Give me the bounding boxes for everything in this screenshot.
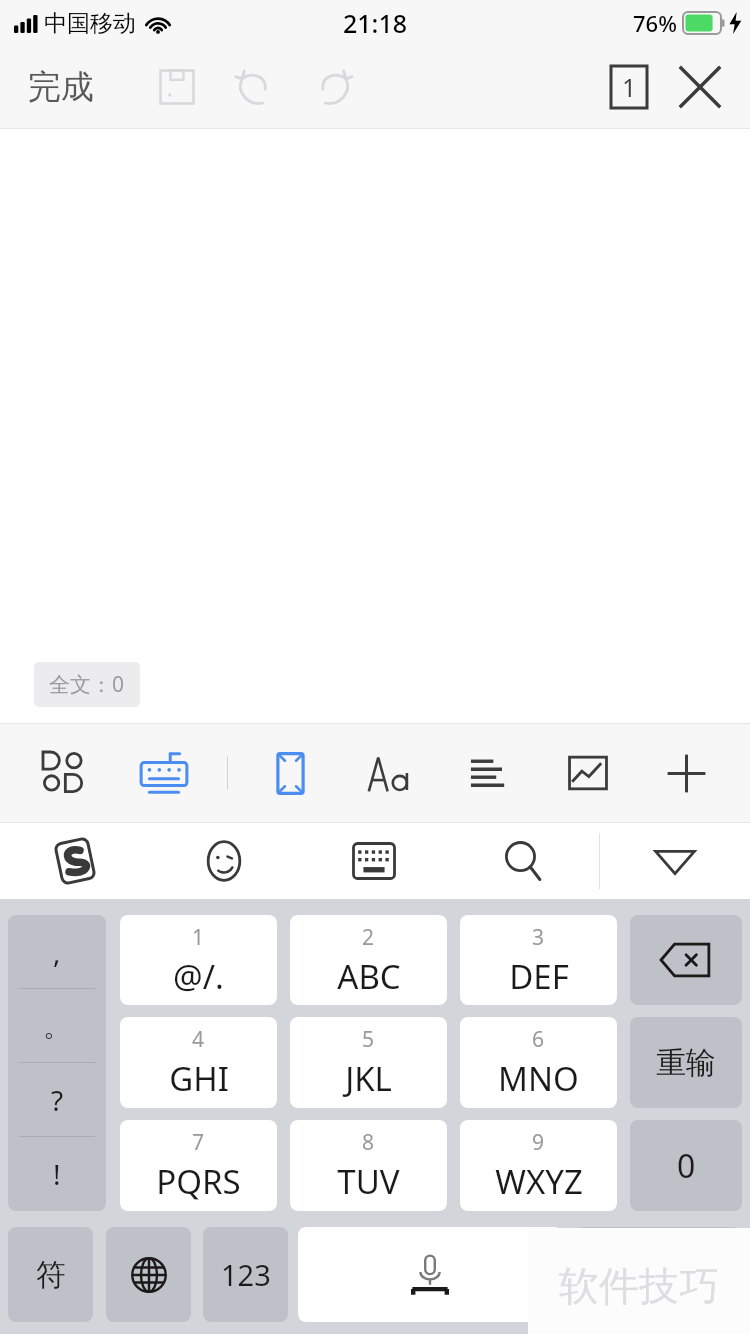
staticText: 全文：0 (49, 670, 125, 699)
button[interactable]: 2 (290, 915, 447, 1005)
button[interactable]: 重输 (630, 1017, 742, 1108)
button[interactable]: Save (140, 50, 214, 124)
button[interactable]: Hide keyboard (600, 823, 750, 899)
staticText: 符 (36, 1256, 66, 1294)
staticText: 6 (532, 1025, 545, 1054)
button[interactable]: 5 (290, 1017, 447, 1108)
button[interactable]: 6 (460, 1017, 617, 1108)
staticText: PQRS (156, 1159, 241, 1204)
staticText: 3 (532, 923, 545, 952)
staticText: 4 (192, 1025, 205, 1054)
staticText: TUV (337, 1159, 400, 1204)
button[interactable]: Redo (294, 47, 374, 127)
staticText: 2 (362, 923, 375, 952)
button[interactable]: Switch language (106, 1227, 191, 1322)
button[interactable]: Close (664, 51, 736, 123)
button[interactable]: 中/英 (575, 1227, 742, 1322)
button[interactable]: Sogou (0, 823, 149, 899)
button[interactable]: 9 (460, 1120, 617, 1211)
staticText: JKL (345, 1056, 392, 1101)
staticText: 。 (43, 1009, 71, 1044)
staticText: 123 (221, 1255, 271, 1294)
staticText: MNO (498, 1056, 579, 1101)
staticText: ! (53, 1155, 61, 1193)
button[interactable]: , (8, 915, 106, 989)
button[interactable]: Keyboard layout (299, 823, 449, 899)
button[interactable]: ! (8, 1137, 106, 1211)
button[interactable]: Voice input (298, 1227, 562, 1322)
staticText: 76% (633, 8, 677, 38)
staticText: 1 (192, 923, 205, 952)
button[interactable]: Select page (240, 724, 340, 822)
button[interactable]: 1 (120, 915, 277, 1005)
button[interactable]: Page count (594, 52, 664, 122)
button[interactable]: Undo (214, 47, 294, 127)
staticText: 21:18 (343, 6, 408, 40)
button[interactable]: Font (340, 724, 439, 822)
staticText: 软件技巧 (559, 1261, 719, 1311)
button[interactable]: Delete (630, 915, 742, 1005)
staticText: 重输 (656, 1044, 716, 1082)
staticText: 1 (622, 70, 637, 104)
button[interactable]: 123 (203, 1227, 288, 1322)
staticText: DEF (509, 954, 569, 999)
button[interactable]: 0 (630, 1120, 742, 1211)
button[interactable]: 3 (460, 915, 617, 1005)
staticText: , (53, 933, 61, 971)
staticText: 中/英 (628, 1257, 690, 1293)
button[interactable]: 7 (120, 1120, 277, 1211)
staticText: 7 (192, 1128, 205, 1157)
staticText: 完成 (28, 66, 94, 108)
button[interactable]: 全文：0 (34, 662, 140, 707)
staticText: 0 (677, 1144, 696, 1188)
staticText: ABC (337, 954, 401, 999)
button[interactable]: Image (538, 724, 637, 822)
button[interactable]: 4 (120, 1017, 277, 1108)
button[interactable]: ? (8, 1063, 106, 1137)
button[interactable]: 完成 (10, 56, 112, 118)
button[interactable]: 8 (290, 1120, 447, 1211)
button[interactable]: Blocks (14, 724, 114, 822)
button[interactable]: Align (439, 724, 538, 822)
staticText: 中国移动 (44, 9, 136, 38)
button[interactable]: Keyboard panel (114, 724, 214, 822)
staticText: 5 (362, 1025, 375, 1054)
staticText: GHI (169, 1056, 229, 1101)
button[interactable]: Search (449, 823, 599, 899)
button[interactable]: 。 (8, 989, 106, 1063)
staticText: ? (51, 1081, 64, 1119)
staticText: 9 (532, 1128, 545, 1157)
staticText: 8 (362, 1128, 375, 1157)
button[interactable]: Add (637, 724, 736, 822)
staticText: @/. (173, 954, 224, 999)
button[interactable]: Emoji (149, 823, 299, 899)
staticText: WXYZ (495, 1159, 583, 1204)
button[interactable]: 符 (8, 1227, 93, 1322)
